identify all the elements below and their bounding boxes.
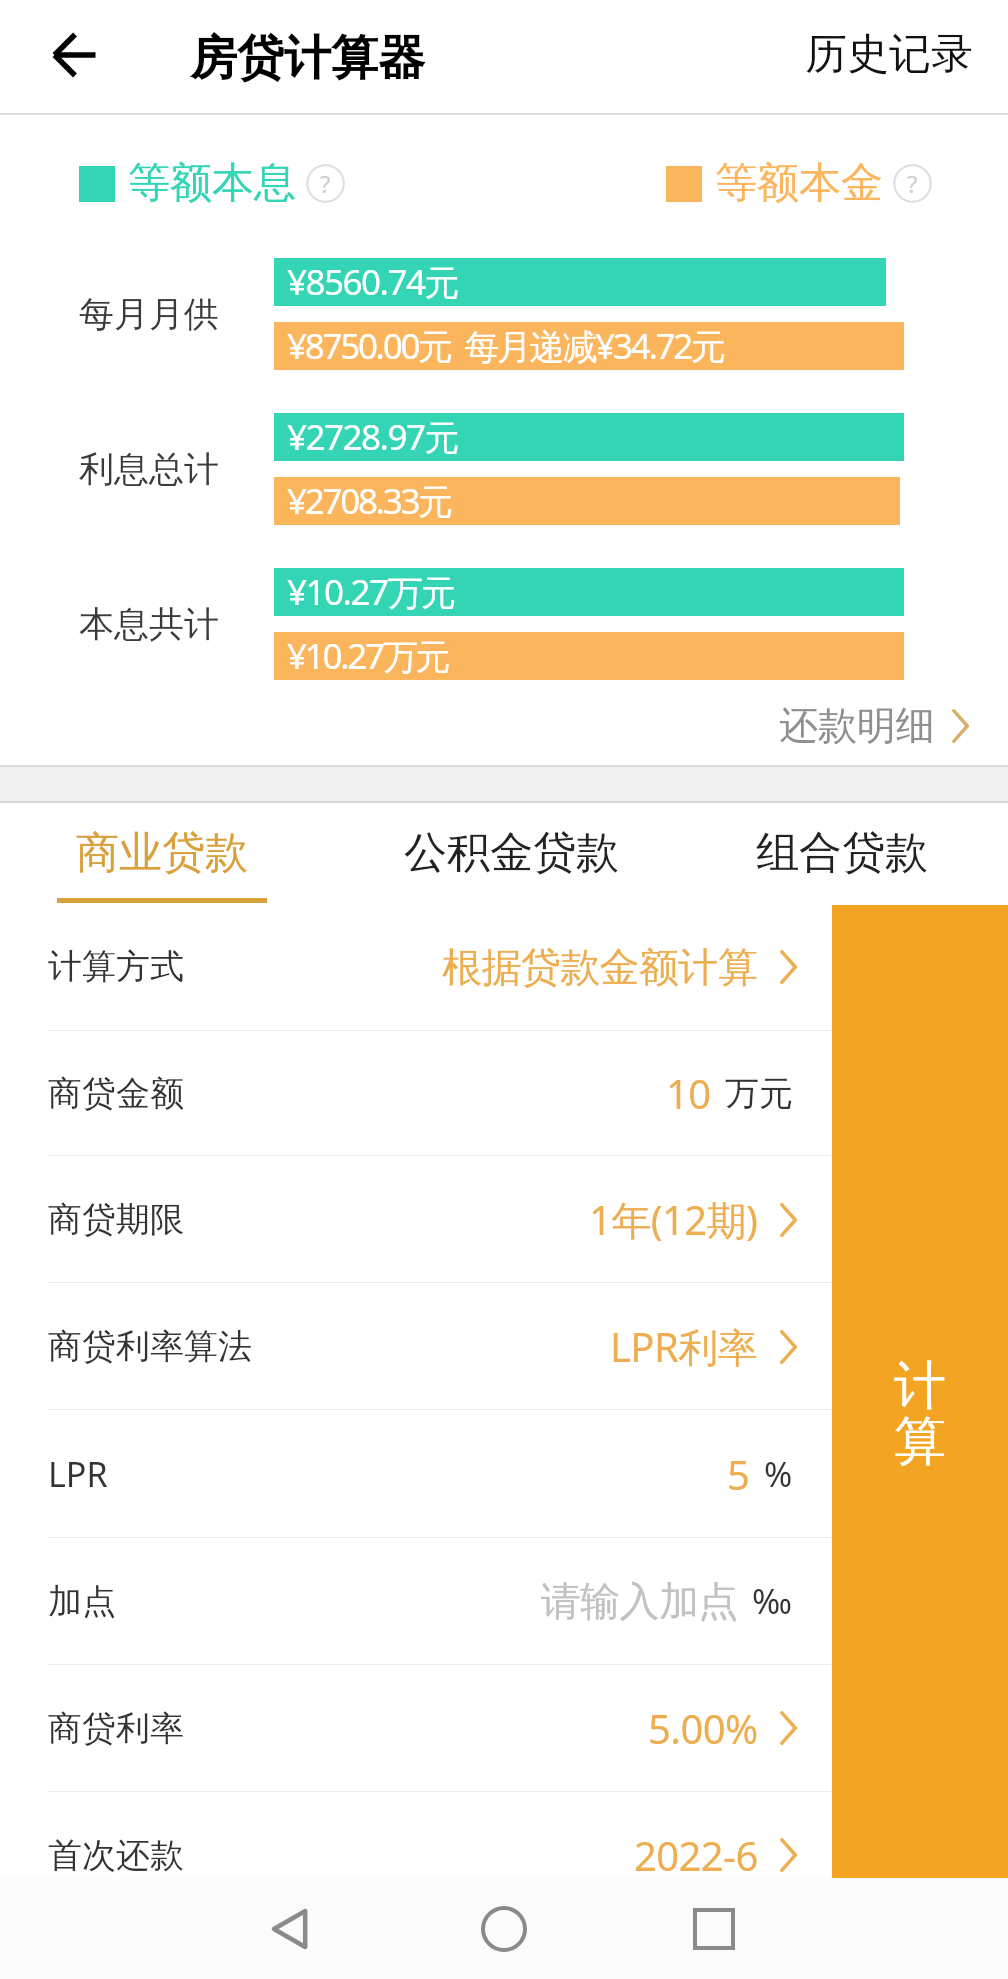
staticText: ‰: [752, 1578, 793, 1624]
staticText: 加点: [48, 1580, 116, 1623]
staticText: 首次还款: [48, 1834, 184, 1877]
button[interactable]: 商贷利率: [0, 1665, 1008, 1791]
button[interactable]: 历史记录: [770, 6, 1008, 103]
button[interactable]: 商贷金额: [0, 1031, 1008, 1155]
staticText: 本息共计: [79, 602, 219, 646]
staticText: LPR: [48, 1451, 108, 1497]
staticText: 1年(12期): [589, 1192, 758, 1247]
button[interactable]: Recents: [678, 1893, 750, 1965]
staticText: 5.00%: [648, 1701, 758, 1755]
staticText: 请输入加点: [541, 1576, 738, 1626]
staticText: 等额本金: [715, 157, 883, 210]
button[interactable]: 加点: [0, 1538, 1008, 1664]
staticText: 还款明细: [779, 701, 935, 750]
staticText: ¥8560.74元: [287, 258, 459, 306]
staticText: ¥8750.00元 每月递减¥34.72元: [287, 322, 724, 370]
staticText: %: [764, 1451, 793, 1497]
staticText: 万元: [725, 1072, 793, 1115]
staticText: 计 算: [894, 1353, 946, 1474]
button[interactable]: 计 算: [832, 905, 1008, 1878]
staticText: 组合贷款: [756, 826, 928, 880]
button[interactable]: Help: [306, 164, 345, 203]
button[interactable]: 组合贷款: [716, 803, 968, 903]
staticText: 计算方式: [48, 945, 184, 988]
button[interactable]: Back: [36, 16, 114, 94]
staticText: ¥10.27万元: [287, 632, 449, 680]
staticText: 等额本息: [128, 157, 296, 210]
staticText: 历史记录: [805, 28, 973, 81]
button[interactable]: Home: [468, 1893, 540, 1965]
staticText: ¥2728.97元: [287, 413, 459, 461]
button[interactable]: 计算方式: [0, 903, 1008, 1030]
button[interactable]: 公积金贷款: [364, 803, 659, 903]
staticText: ?: [907, 167, 918, 200]
staticText: 根据贷款金额计算: [442, 942, 758, 992]
staticText: ¥2708.33元: [287, 477, 451, 525]
button[interactable]: 首次还款: [0, 1792, 1008, 1918]
staticText: 商业贷款: [76, 826, 248, 880]
button[interactable]: Help: [893, 164, 932, 203]
button[interactable]: Back: [254, 1893, 326, 1965]
staticText: 10: [666, 1066, 711, 1120]
staticText: ?: [320, 167, 331, 200]
staticText: LPR利率: [610, 1319, 758, 1374]
staticText: 商贷期限: [48, 1198, 184, 1241]
staticText: 房贷计算器: [190, 29, 425, 88]
staticText: 商贷金额: [48, 1072, 184, 1115]
button[interactable]: LPR: [0, 1410, 1008, 1537]
staticText: 利息总计: [79, 447, 219, 491]
button[interactable]: 等额本金: [666, 157, 932, 210]
staticText: 商贷利率算法: [48, 1325, 252, 1368]
staticText: ¥10.27万元: [287, 568, 455, 616]
staticText: 公积金贷款: [404, 826, 619, 880]
staticText: 每月月供: [79, 292, 219, 336]
button[interactable]: 商贷利率算法: [0, 1283, 1008, 1409]
button[interactable]: 还款明细: [779, 701, 1008, 750]
staticText: 2022-6: [634, 1828, 758, 1882]
staticText: 5: [727, 1447, 750, 1501]
staticText: 商贷利率: [48, 1707, 184, 1750]
button[interactable]: 商业贷款: [17, 803, 307, 903]
button[interactable]: 等额本息: [79, 157, 345, 210]
button[interactable]: 商贷期限: [0, 1156, 1008, 1282]
